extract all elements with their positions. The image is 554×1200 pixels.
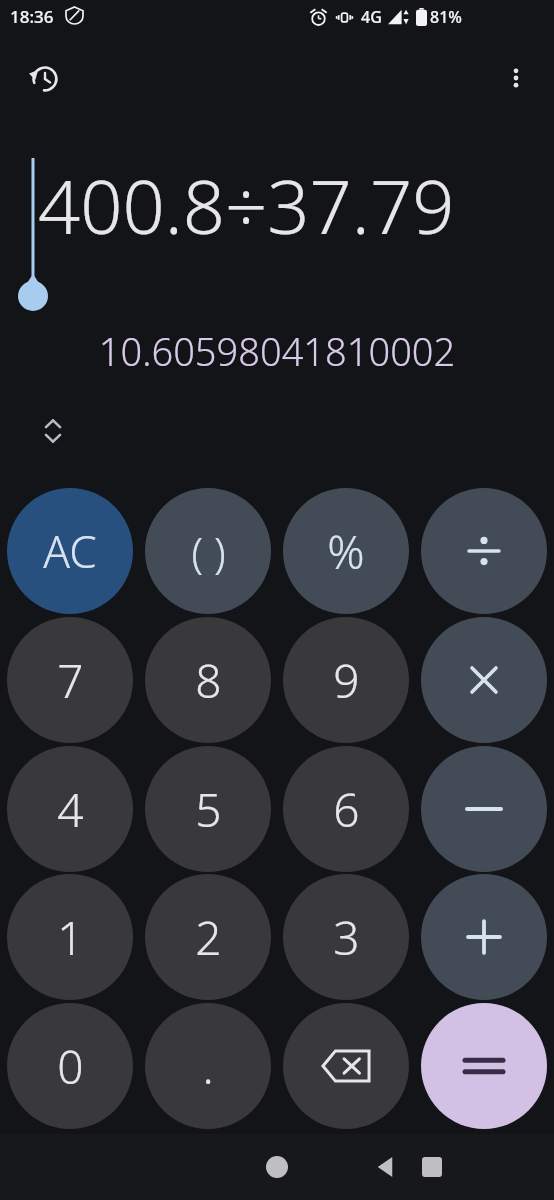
- staticText: 6: [333, 778, 360, 841]
- staticText: 8: [195, 649, 222, 712]
- button[interactable]: 7: [7, 617, 133, 743]
- staticText: 81%: [430, 6, 462, 28]
- staticText: 0: [57, 1035, 84, 1098]
- staticText: 400.8÷37.79: [38, 155, 548, 256]
- staticText: 18:36: [10, 5, 54, 28]
- staticText: 5: [195, 778, 222, 841]
- staticText: ( ): [191, 523, 226, 580]
- button[interactable]: Plus: [421, 874, 547, 1000]
- button[interactable]: 1: [7, 874, 133, 1000]
- button[interactable]: Back: [108, 1134, 554, 1200]
- staticText: 9: [333, 649, 360, 712]
- staticText: 10.60598041810002: [18, 325, 536, 377]
- staticText: 7: [57, 649, 84, 712]
- staticText: 4G: [361, 6, 382, 28]
- button[interactable]: Divide: [421, 488, 547, 614]
- staticText: 4: [57, 778, 84, 841]
- button[interactable]: 0: [7, 1003, 133, 1129]
- button[interactable]: 5: [145, 746, 271, 872]
- button[interactable]: Multiply: [421, 617, 547, 743]
- staticText: 2: [195, 906, 222, 969]
- staticText: AC: [43, 521, 97, 581]
- button[interactable]: Backspace: [283, 1003, 409, 1129]
- button[interactable]: Expand: [26, 404, 80, 458]
- button[interactable]: Home: [245, 1135, 309, 1199]
- staticText: 3: [333, 906, 360, 969]
- button[interactable]: 3: [283, 874, 409, 1000]
- button[interactable]: Recents: [400, 1135, 464, 1199]
- button[interactable]: Minus: [421, 746, 547, 872]
- button[interactable]: History: [16, 50, 74, 108]
- staticText: 1: [57, 906, 84, 969]
- button[interactable]: Equals: [421, 1003, 547, 1129]
- button[interactable]: 2: [145, 874, 271, 1000]
- button[interactable]: 6: [283, 746, 409, 872]
- button[interactable]: 8: [145, 617, 271, 743]
- staticText: .: [202, 1035, 214, 1098]
- button[interactable]: .: [145, 1003, 271, 1129]
- staticText: %: [327, 520, 365, 583]
- button[interactable]: More options: [488, 50, 544, 106]
- button[interactable]: AC: [7, 488, 133, 614]
- button[interactable]: %: [283, 488, 409, 614]
- button[interactable]: 9: [283, 617, 409, 743]
- button[interactable]: ( ): [145, 488, 271, 614]
- button[interactable]: 4: [7, 746, 133, 872]
